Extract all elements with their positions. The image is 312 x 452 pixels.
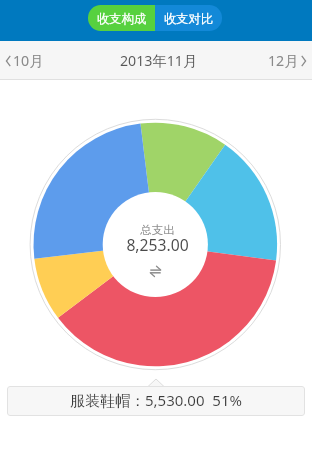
button[interactable]: 服装鞋帽：5,530.00 51% [7, 386, 305, 416]
staticText: 2013年11月 [120, 51, 198, 70]
staticText: 总支出 [140, 223, 175, 237]
staticText: 8,253.00 [126, 234, 189, 255]
staticText: 10月 [13, 51, 44, 70]
button[interactable]: 支出构成饼图 [30, 119, 281, 370]
staticText: 收支构成 [97, 11, 147, 26]
button[interactable]: 12月 [268, 41, 308, 80]
staticText: 12月 [268, 51, 299, 70]
button[interactable]: 10月 [4, 41, 44, 80]
button[interactable]: 切换收支 [146, 262, 164, 280]
staticText: 收支对比 [164, 11, 214, 26]
button[interactable]: 收支构成 [88, 5, 155, 31]
staticText: 服装鞋帽：5,530.00 51% [70, 390, 242, 410]
button[interactable]: 收支对比 [155, 5, 222, 31]
